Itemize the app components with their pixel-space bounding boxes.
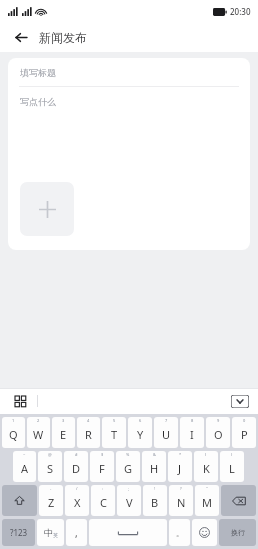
button[interactable]: 7	[154, 417, 178, 448]
staticText: 3	[62, 418, 65, 423]
button[interactable]: "	[195, 485, 219, 516]
staticText: -	[50, 486, 52, 491]
button[interactable]: ,	[66, 519, 87, 546]
staticText: :	[102, 486, 104, 491]
staticText: P	[241, 427, 248, 442]
button[interactable]: 填写标题	[8, 58, 250, 86]
staticText: 2	[37, 418, 40, 423]
button[interactable]: 0	[232, 417, 256, 448]
button[interactable]: ;	[117, 485, 141, 516]
button[interactable]: %	[116, 451, 140, 482]
staticText: 9	[217, 418, 220, 423]
staticText: W	[33, 427, 44, 442]
staticText: K	[203, 461, 210, 476]
staticText: 1	[12, 418, 15, 423]
button[interactable]: :	[91, 485, 115, 516]
staticText: ?	[180, 486, 182, 491]
staticText: 6	[139, 418, 142, 423]
button[interactable]: 6	[128, 417, 152, 448]
button[interactable]: Keyboard layout	[11, 392, 29, 410]
staticText: Z	[48, 495, 55, 510]
staticText: Q	[9, 427, 18, 442]
staticText: G	[124, 461, 133, 476]
button[interactable]: 写点什么	[8, 87, 250, 182]
button[interactable]: $	[90, 451, 114, 482]
staticText: @	[48, 452, 52, 457]
staticText: 填写标题	[20, 67, 56, 78]
button[interactable]: *	[168, 451, 192, 482]
staticText: N	[177, 495, 186, 510]
staticText: 写点什么	[20, 96, 56, 107]
button[interactable]: )	[220, 451, 244, 482]
staticText: $	[101, 452, 104, 457]
button[interactable]: Space	[89, 519, 167, 546]
button[interactable]: 4	[77, 417, 100, 448]
staticText: 4	[87, 418, 90, 423]
staticText: ;	[128, 486, 130, 491]
button[interactable]: ~	[13, 451, 36, 482]
staticText: #	[75, 452, 78, 457]
staticText: 。	[176, 528, 184, 538]
button[interactable]: 换行	[219, 519, 256, 546]
staticText: M	[202, 495, 212, 510]
staticText: H	[150, 461, 159, 476]
button[interactable]: 2	[27, 417, 50, 448]
button[interactable]: 3	[52, 417, 75, 448]
button[interactable]: 5	[102, 417, 126, 448]
button[interactable]: Backspace	[221, 485, 256, 516]
staticText: 换行	[231, 528, 245, 537]
staticText: ,	[75, 526, 78, 540]
staticText: X	[74, 495, 81, 510]
button[interactable]: Hide keyboard	[231, 395, 249, 408]
staticText: )	[231, 452, 233, 457]
button[interactable]: 9	[206, 417, 230, 448]
button[interactable]: #	[64, 451, 88, 482]
button[interactable]: /	[65, 485, 89, 516]
staticText: 新闻发布	[39, 30, 87, 45]
staticText: /	[76, 486, 78, 491]
button[interactable]: ?	[169, 485, 193, 516]
staticText: U	[162, 427, 171, 442]
staticText: O	[214, 427, 223, 442]
staticText: ?123	[10, 527, 28, 538]
button[interactable]: Back	[10, 26, 32, 48]
button[interactable]: (	[194, 451, 218, 482]
staticText: V	[126, 495, 133, 510]
staticText: 0	[243, 418, 246, 423]
staticText: &	[153, 452, 156, 457]
staticText: 20:30	[230, 6, 251, 17]
staticText: F	[99, 461, 105, 476]
staticText: (	[205, 452, 207, 457]
staticText: "	[206, 486, 208, 491]
button[interactable]: 中	[37, 519, 64, 546]
button[interactable]: 8	[180, 417, 204, 448]
staticText: E	[60, 427, 67, 442]
button[interactable]: ?123	[2, 519, 35, 546]
button[interactable]: !	[143, 485, 167, 516]
button[interactable]: Add image	[20, 182, 74, 236]
button[interactable]: 1	[2, 417, 25, 448]
button[interactable]: @	[38, 451, 62, 482]
staticText: *	[179, 452, 182, 457]
button[interactable]: Emoji	[192, 519, 217, 546]
button[interactable]: &	[142, 451, 166, 482]
button[interactable]: 。	[169, 519, 190, 546]
button[interactable]: -	[39, 485, 63, 516]
staticText: 5	[113, 418, 116, 423]
staticText: R	[85, 427, 92, 442]
staticText: A	[21, 461, 29, 476]
staticText: B	[151, 495, 159, 510]
button[interactable]: Shift	[2, 485, 37, 516]
staticText: J	[178, 461, 182, 476]
staticText: 7	[165, 418, 168, 423]
staticText: D	[72, 461, 81, 476]
staticText: !	[154, 486, 156, 491]
staticText: S	[47, 461, 54, 476]
staticText: 8	[191, 418, 194, 423]
staticText: Y	[137, 427, 144, 442]
staticText: T	[111, 427, 118, 442]
staticText: I	[190, 427, 194, 442]
staticText: %	[126, 452, 130, 457]
staticText: L	[229, 461, 235, 476]
staticText: C	[100, 495, 107, 510]
